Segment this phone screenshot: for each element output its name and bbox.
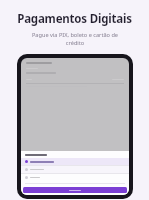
staticText: Pague via PIX, boleto e cartão de crédit… bbox=[27, 31, 123, 47]
button[interactable]: Tablet com tela de pagamento bbox=[21, 58, 129, 195]
button[interactable] bbox=[21, 174, 129, 181]
staticText: Pagamentos Digitais bbox=[17, 11, 132, 27]
button[interactable] bbox=[21, 166, 129, 173]
button[interactable] bbox=[21, 158, 129, 165]
button[interactable] bbox=[23, 187, 127, 193]
